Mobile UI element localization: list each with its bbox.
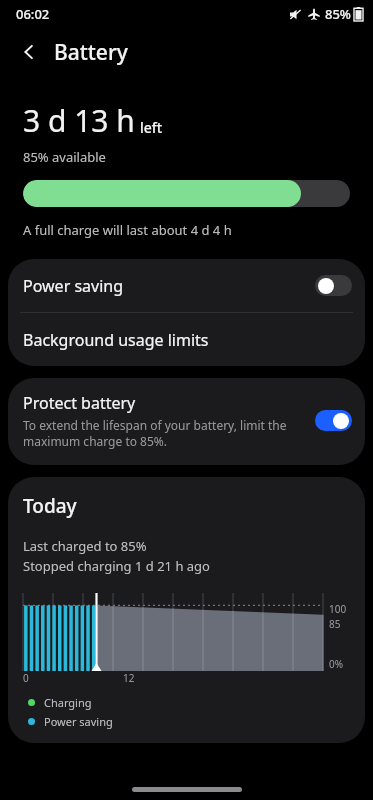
button[interactable]: Background usage limits	[8, 313, 365, 366]
staticText: 12	[123, 671, 135, 685]
staticText: 85%	[325, 5, 351, 23]
staticText: To extend the lifespan of your battery, …	[23, 417, 307, 449]
staticText: 100	[329, 602, 347, 616]
staticText: 06:02	[16, 5, 50, 23]
button[interactable]: Off	[315, 275, 352, 296]
staticText: 0%	[329, 657, 344, 671]
staticText: 85% available	[23, 148, 106, 166]
staticText: Protect battery	[23, 392, 136, 414]
button[interactable]: Protect battery	[8, 378, 365, 465]
staticText: Last charged to 85%	[23, 537, 147, 555]
staticText: A full charge will last about 4 d 4 h	[23, 221, 232, 239]
staticText: Battery	[54, 38, 128, 67]
staticText: Today	[23, 493, 77, 519]
button[interactable]: On	[315, 410, 352, 431]
staticText: left	[140, 118, 163, 137]
button[interactable]: Today	[8, 477, 365, 743]
staticText: Power saving	[23, 275, 315, 297]
staticText: Charging	[44, 695, 92, 710]
staticText: Power saving	[44, 714, 113, 729]
staticText: Background usage limits	[23, 329, 209, 351]
staticText: 0	[23, 671, 29, 685]
staticText: 85	[329, 617, 341, 631]
staticText: Stopped charging 1 d 21 h ago	[23, 557, 210, 575]
staticText: 3 d 13 h	[23, 100, 135, 141]
button[interactable]: Power saving	[8, 259, 365, 312]
button[interactable]: Back	[12, 35, 46, 69]
